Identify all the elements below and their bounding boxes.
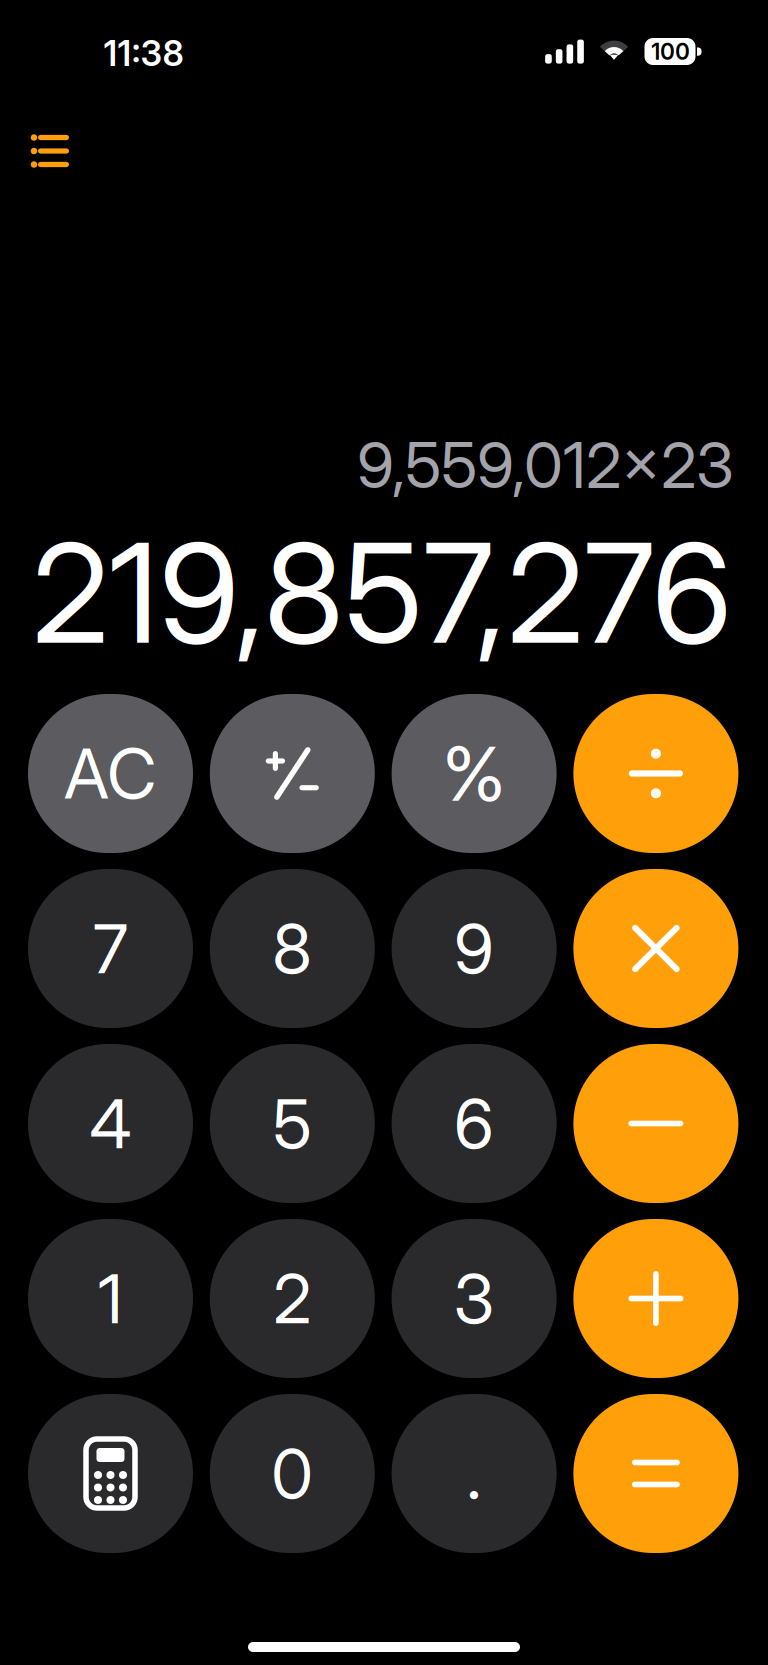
button[interactable]: 6	[392, 1044, 557, 1203]
button[interactable]: 4	[28, 1044, 193, 1203]
staticText: 0	[271, 1432, 313, 1515]
button[interactable]: 3	[392, 1219, 557, 1378]
button[interactable]: Equals	[573, 1394, 738, 1553]
staticText: 3	[454, 1257, 495, 1340]
button[interactable]: Divide	[573, 694, 738, 853]
staticText: 219,857,276	[32, 510, 732, 676]
button[interactable]: Multiply	[573, 869, 738, 1028]
button[interactable]: Plus	[573, 1219, 738, 1378]
button[interactable]: 9	[392, 869, 557, 1028]
staticText: 9	[454, 907, 494, 990]
staticText: 2	[273, 1257, 311, 1340]
staticText: 7	[93, 907, 128, 990]
staticText: 9,559,012×23	[357, 427, 734, 503]
staticText: .	[467, 1432, 482, 1515]
button[interactable]: %	[392, 694, 557, 853]
button[interactable]: AC	[28, 694, 193, 853]
staticText: 8	[272, 907, 312, 990]
button[interactable]: 0	[210, 1394, 375, 1553]
button[interactable]: .	[392, 1394, 557, 1553]
button[interactable]: Minus	[573, 1044, 738, 1203]
staticText: 6	[454, 1082, 494, 1165]
button[interactable]: 8	[210, 869, 375, 1028]
button[interactable]: 7	[28, 869, 193, 1028]
button[interactable]: 2	[210, 1219, 375, 1378]
staticText: AC	[64, 732, 157, 815]
button[interactable]: 5	[210, 1044, 375, 1203]
staticText: 5	[273, 1082, 312, 1165]
staticText: 11:38	[103, 32, 183, 74]
button[interactable]: Calculator	[28, 1394, 193, 1553]
button[interactable]: 1	[28, 1219, 193, 1378]
staticText: 1	[98, 1257, 123, 1340]
staticText: %	[443, 728, 506, 819]
staticText: 100	[651, 38, 690, 65]
staticText: 4	[89, 1082, 131, 1165]
button[interactable]: Plus Minus	[210, 694, 375, 853]
button[interactable]: History	[8, 111, 98, 191]
